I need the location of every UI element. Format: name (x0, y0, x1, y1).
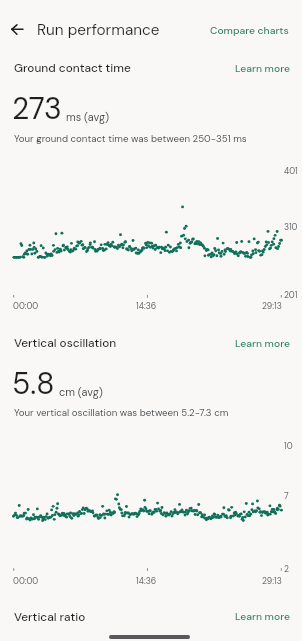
staticText: Learn more (235, 610, 290, 623)
staticText: Vertical oscillation (14, 335, 117, 350)
staticText: Vertical ratio (14, 609, 86, 624)
staticText: Compare charts (210, 24, 289, 37)
staticText: Your ground contact time was between 250… (14, 132, 247, 145)
staticText: Ground contact time (14, 60, 131, 75)
button[interactable]: Learn more (228, 58, 296, 82)
staticText: Your vertical oscillation was between 5.… (14, 406, 229, 419)
staticText: 29:13 (262, 575, 282, 586)
staticText: 00:00 (13, 575, 39, 586)
button[interactable]: Learn more (228, 333, 296, 357)
staticText: Learn more (235, 337, 290, 350)
staticText: 273 (12, 89, 62, 128)
button[interactable]: Learn more (228, 603, 296, 627)
button[interactable]: Compare charts (200, 14, 296, 42)
staticText: 7 (284, 490, 289, 501)
staticText: 401 (284, 165, 298, 176)
staticText: 29:13 (262, 300, 282, 311)
staticText: 00:00 (13, 300, 39, 311)
staticText: 14:36 (136, 575, 157, 586)
staticText: 10 (284, 440, 293, 451)
staticText: 2 (284, 563, 289, 574)
staticText: cm (avg) (59, 385, 103, 399)
staticText: ms (avg) (66, 110, 110, 124)
button[interactable]: Back (2, 12, 36, 46)
staticText: 310 (284, 221, 298, 232)
staticText: 5.8 (12, 364, 55, 403)
staticText: Learn more (235, 62, 290, 75)
staticText: 14:36 (136, 300, 157, 311)
staticText: 201 (284, 289, 298, 300)
staticText: Run performance (37, 20, 160, 40)
